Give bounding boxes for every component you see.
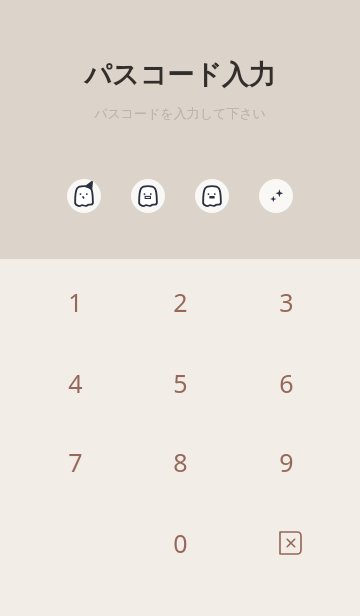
button[interactable]: 7 [33,426,117,498]
staticText: 4 [68,366,83,400]
staticText: 6 [279,366,294,400]
staticText: 0 [173,526,188,560]
button[interactable]: 2 [138,266,222,338]
staticText: パスコードを入力して下さい [94,105,266,121]
staticText: 5 [173,366,188,400]
button[interactable]: 1 [33,266,117,338]
button[interactable]: 4 [33,347,117,419]
staticText: 1 [68,285,83,319]
button[interactable]: 8 [138,426,222,498]
button[interactable]: 6 [244,347,328,419]
staticText: 8 [173,445,188,479]
button[interactable]: 9 [244,426,328,498]
button[interactable]: 5 [138,347,222,419]
button[interactable]: Backspace [244,507,328,579]
staticText: パスコード入力 [84,58,276,92]
staticText: 2 [173,285,188,319]
staticText: 7 [68,445,83,479]
staticText: 9 [279,445,294,479]
button[interactable]: 3 [244,266,328,338]
staticText: 3 [279,285,294,319]
button[interactable]: 0 [138,507,222,579]
